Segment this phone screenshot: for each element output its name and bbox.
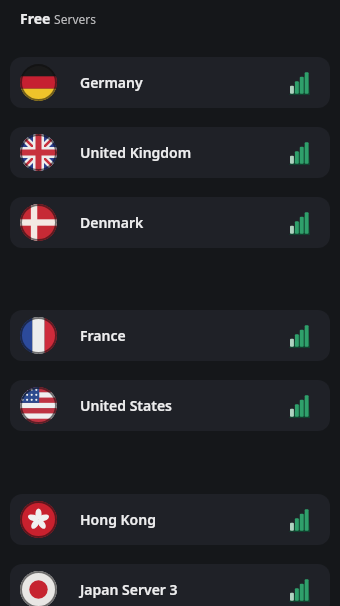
- staticText: Servers: [51, 11, 97, 27]
- staticText: United States: [80, 396, 172, 415]
- button[interactable]: Japan Server 3: [10, 564, 330, 606]
- staticText: Hong Kong: [80, 510, 156, 529]
- staticText: Japan Server 3: [80, 580, 178, 599]
- button[interactable]: Germany: [10, 57, 330, 108]
- button[interactable]: France: [10, 310, 330, 361]
- button[interactable]: United Kingdom: [10, 127, 330, 178]
- button[interactable]: Denmark: [10, 197, 330, 248]
- button[interactable]: United States: [10, 380, 330, 431]
- button[interactable]: Hong Kong: [10, 494, 330, 545]
- staticText: Germany: [80, 73, 143, 92]
- staticText: France: [80, 326, 126, 345]
- staticText: United Kingdom: [80, 143, 192, 162]
- staticText: Denmark: [80, 213, 144, 232]
- staticText: Free: [20, 9, 51, 28]
